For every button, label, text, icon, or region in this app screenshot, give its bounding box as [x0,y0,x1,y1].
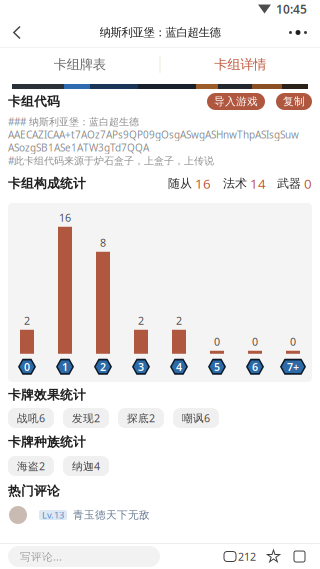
staticText: 写评论... [20,549,62,564]
button[interactable]: 评论 [220,544,260,568]
button[interactable]: 导入游戏 [207,93,265,110]
staticText: 随从 [168,176,192,191]
staticText: 热门评论 [8,483,60,499]
button[interactable]: 探底2 [118,408,164,428]
staticText: 2 [100,359,106,374]
staticText: 14 [250,174,266,193]
staticText: 0 [252,334,258,349]
button[interactable]: 发现2 [63,408,109,428]
staticText: 7+ [287,359,299,374]
staticText: 卡牌种族统计 [8,434,86,450]
staticText: #此卡组代码来源于炉石盒子，上盒子，上传说 [8,154,214,167]
staticText: 纳迦4 [72,459,100,473]
staticText: 武器 [277,176,301,191]
button[interactable]: 海盗2 [8,456,54,476]
staticText: 2 [24,313,30,328]
staticText: 2 [176,313,182,328]
staticText: 纳斯利亚堡：蓝白超生德 [99,25,220,40]
button[interactable]: 返回 [3,18,31,47]
staticText: 0 [214,334,220,349]
staticText: 嘲讽6 [182,411,210,425]
staticText: ### 纳斯利亚堡：蓝白超生德 [8,115,139,128]
staticText: 2 [138,313,144,328]
button[interactable]: 纳迦4 [63,456,109,476]
button[interactable]: 卡组牌表 [0,48,159,81]
staticText: 卡组牌表 [54,56,106,73]
button[interactable]: 卡组详情 [160,48,320,81]
staticText: 3 [138,359,144,374]
staticText: 5 [214,359,220,374]
staticText: ASozgSB1ASe1ATW3gTd7QQA [8,141,149,154]
staticText: 海盗2 [17,459,45,473]
staticText: 16 [59,210,71,225]
button[interactable]: 嘲讽6 [173,408,219,428]
staticText: 0 [290,334,296,349]
staticText: 复制 [283,95,305,108]
staticText: 10:45 [276,1,307,17]
staticText: 0 [304,174,312,193]
staticText: 发现2 [72,411,100,425]
staticText: 导入游戏 [214,95,258,108]
staticText: 16 [195,174,211,193]
staticText: AAECAZICAA+t7AOz7APs9QP09gOsgASwgASHnwTh… [8,128,299,141]
button[interactable]: 分享 [287,544,312,568]
staticText: 8 [100,235,106,250]
staticText: 战吼6 [17,411,45,425]
staticText: 1 [62,359,68,374]
staticText: 卡组详情 [214,56,266,73]
button[interactable]: 战吼6 [8,408,54,428]
staticText: 6 [252,359,258,374]
staticText: 212 [238,549,256,564]
staticText: 法术 [223,176,247,191]
staticText: 0 [24,359,30,374]
button[interactable]: 复制 [276,93,312,110]
button[interactable]: 收藏 [260,544,287,568]
staticText: 卡组代码 [8,93,60,109]
button[interactable]: 更多 [279,18,317,47]
staticText: 卡组构成统计 [8,175,86,191]
staticText: 4 [176,359,182,374]
staticText: 卡牌效果统计 [8,387,86,403]
staticText: 探底2 [127,411,155,425]
button[interactable]: 写评论... [8,546,160,567]
staticText: Lv.13 [42,509,64,521]
staticText: 青玉德天下无敌 [73,508,150,522]
